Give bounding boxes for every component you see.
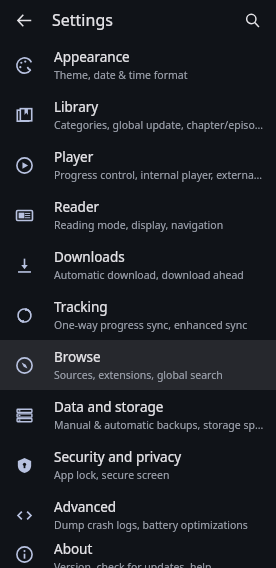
staticText: Sources, extensions, global search (54, 368, 223, 382)
staticText: Advanced (54, 498, 117, 516)
button[interactable]: Security and privacy (0, 440, 276, 490)
staticText: Data and storage (54, 398, 164, 416)
staticText: Theme, date & time format (54, 68, 188, 82)
button[interactable]: Search (238, 6, 266, 34)
staticText: Reading mode, display, navigation (54, 218, 224, 232)
staticText: Dump crash logs, battery optimizations (54, 518, 248, 532)
button[interactable]: Back (10, 6, 38, 34)
button[interactable]: Data and storage (0, 390, 276, 440)
staticText: Library (54, 98, 99, 116)
staticText: Settings (52, 9, 113, 31)
button[interactable]: Advanced (0, 490, 276, 540)
staticText: Player (54, 148, 94, 166)
button[interactable]: Tracking (0, 290, 276, 340)
staticText: Version, check for updates, help (54, 560, 212, 568)
staticText: Tracking (54, 298, 108, 316)
staticText: About (54, 540, 93, 558)
button[interactable]: About (0, 540, 276, 568)
staticText: Progress control, internal player, exter… (54, 168, 264, 182)
button[interactable]: Appearance (0, 40, 276, 90)
staticText: Security and privacy (54, 448, 182, 466)
staticText: Appearance (54, 48, 130, 66)
staticText: App lock, secure screen (54, 468, 170, 482)
staticText: Browse (54, 348, 101, 366)
staticText: Automatic download, download ahead (54, 268, 244, 282)
staticText: Categories, global update, chapter/episo… (54, 118, 264, 132)
button[interactable]: Library (0, 90, 276, 140)
staticText: Downloads (54, 248, 125, 266)
button[interactable]: Reader (0, 190, 276, 240)
staticText: One-way progress sync, enhanced sync (54, 318, 248, 332)
button[interactable]: Downloads (0, 240, 276, 290)
staticText: Reader (54, 198, 100, 216)
staticText: Manual & automatic backups, storage spac… (54, 418, 264, 432)
button[interactable]: Browse (0, 340, 276, 390)
button[interactable]: Player (0, 140, 276, 190)
